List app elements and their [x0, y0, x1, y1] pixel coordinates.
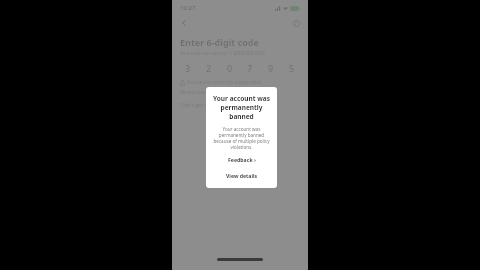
staticText: Your code was sent to +1 (800) 555-0142 — [180, 50, 265, 56]
staticText: Enter 6-digit code — [180, 36, 259, 48]
staticText: Your account was permanently banned beca… — [212, 126, 271, 150]
staticText: 10:27 — [180, 4, 196, 12]
button[interactable]: View details — [212, 172, 271, 179]
button[interactable]: Help — [290, 17, 302, 29]
staticText: Account is currently suspended — [187, 79, 261, 86]
button[interactable]: 3 — [180, 61, 196, 75]
staticText: ? — [295, 20, 297, 26]
staticText: Feedback › — [228, 156, 256, 163]
button[interactable]: 5 — [284, 61, 300, 75]
staticText: Your account was permanently banned — [212, 94, 271, 121]
staticText: 9 — [268, 62, 274, 74]
button[interactable]: 0 — [222, 61, 238, 75]
staticText: Resend code — [180, 89, 210, 95]
button[interactable]: 2 — [201, 61, 217, 75]
staticText: 5 — [289, 62, 295, 74]
button[interactable]: Back — [178, 17, 190, 29]
staticText: 7 — [247, 62, 253, 74]
button[interactable]: 9 — [263, 61, 279, 75]
staticText: View details — [226, 172, 258, 179]
button[interactable]: Feedback › — [212, 156, 271, 163]
staticText: 0 — [227, 62, 233, 74]
button[interactable]: 7 — [242, 61, 258, 75]
staticText: Didn't get a code? — [180, 102, 222, 109]
staticText: 2 — [206, 62, 212, 74]
staticText: 3 — [185, 62, 191, 74]
